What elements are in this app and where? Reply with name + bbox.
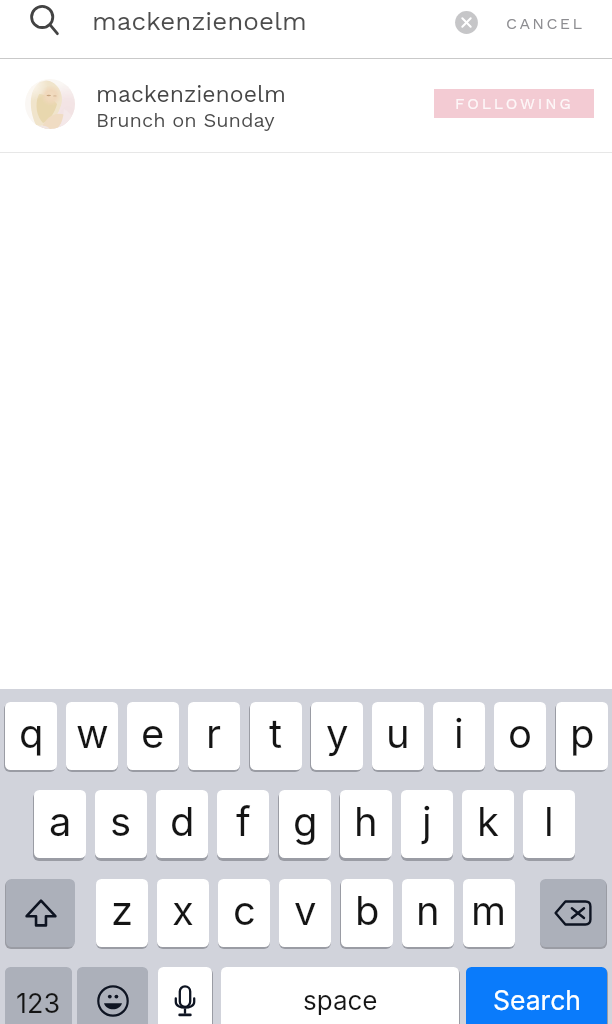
button[interactable]: f [217, 790, 269, 858]
staticText: k [477, 797, 499, 845]
button[interactable]: Search [20, 0, 66, 46]
staticText: m [471, 886, 507, 934]
button[interactable]: n [402, 879, 454, 947]
button[interactable]: a [34, 790, 86, 858]
staticText: a [49, 797, 72, 845]
button[interactable]: s [95, 790, 147, 858]
button[interactable]: Backspace [540, 879, 606, 947]
button[interactable]: h [340, 790, 392, 858]
staticText: i [454, 709, 464, 757]
button[interactable]: mackenzienoelm [0, 59, 612, 152]
staticText: c [233, 886, 256, 934]
staticText: FOLLOWING [455, 95, 574, 113]
staticText: Search [493, 984, 581, 1016]
button[interactable]: y [311, 702, 363, 770]
button[interactable]: CANCEL [506, 14, 585, 33]
staticText: v [294, 886, 317, 934]
staticText: l [544, 797, 554, 845]
staticText: d [170, 797, 195, 845]
staticText: o [508, 709, 532, 757]
button[interactable]: m [463, 879, 515, 947]
button[interactable]: x [157, 879, 209, 947]
button[interactable]: Shift [6, 879, 75, 947]
button[interactable]: d [156, 790, 208, 858]
staticText: CANCEL [506, 14, 585, 33]
button[interactable]: Emoji keyboard [77, 967, 148, 1024]
staticText: p [570, 709, 595, 757]
staticText: x [172, 886, 194, 934]
button[interactable]: g [279, 790, 331, 858]
button[interactable]: c [218, 879, 270, 947]
button[interactable]: Dictate [158, 967, 212, 1024]
button[interactable]: i [433, 702, 485, 770]
button[interactable]: j [401, 790, 453, 858]
button[interactable]: p [556, 702, 608, 770]
button[interactable]: w [66, 702, 118, 770]
button[interactable]: Clear text [448, 4, 485, 41]
staticText: e [141, 709, 165, 757]
staticText: f [236, 797, 251, 845]
button[interactable]: q [5, 702, 57, 770]
staticText: r [206, 709, 222, 757]
staticText: y [326, 709, 349, 757]
staticText: q [19, 709, 44, 757]
staticText: h [354, 797, 378, 845]
button[interactable]: u [372, 702, 424, 770]
button[interactable]: e [127, 702, 179, 770]
button[interactable]: l [523, 790, 575, 858]
button[interactable]: Search [466, 967, 607, 1024]
button[interactable]: FOLLOWING [434, 89, 594, 118]
staticText: mackenzienoelm [96, 81, 286, 108]
staticText: s [110, 797, 132, 845]
button[interactable]: b [341, 879, 393, 947]
staticText: space [303, 985, 378, 1016]
staticText: mackenzienoelm [92, 6, 307, 36]
button[interactable]: o [494, 702, 546, 770]
button[interactable]: space [221, 967, 459, 1024]
staticText: 123 [16, 987, 61, 1020]
staticText: u [386, 709, 410, 757]
staticText: j [422, 797, 432, 845]
button[interactable]: 123 [5, 967, 72, 1024]
staticText: b [355, 886, 380, 934]
staticText: n [416, 886, 440, 934]
staticText: z [111, 886, 134, 934]
button[interactable]: v [279, 879, 331, 947]
staticText: w [76, 709, 109, 757]
button[interactable]: r [188, 702, 240, 770]
button[interactable]: k [462, 790, 514, 858]
staticText: t [269, 709, 283, 757]
staticText: Brunch on Sunday [96, 108, 275, 131]
staticText: g [293, 797, 318, 845]
button[interactable]: z [96, 879, 148, 947]
button[interactable]: t [250, 702, 302, 770]
